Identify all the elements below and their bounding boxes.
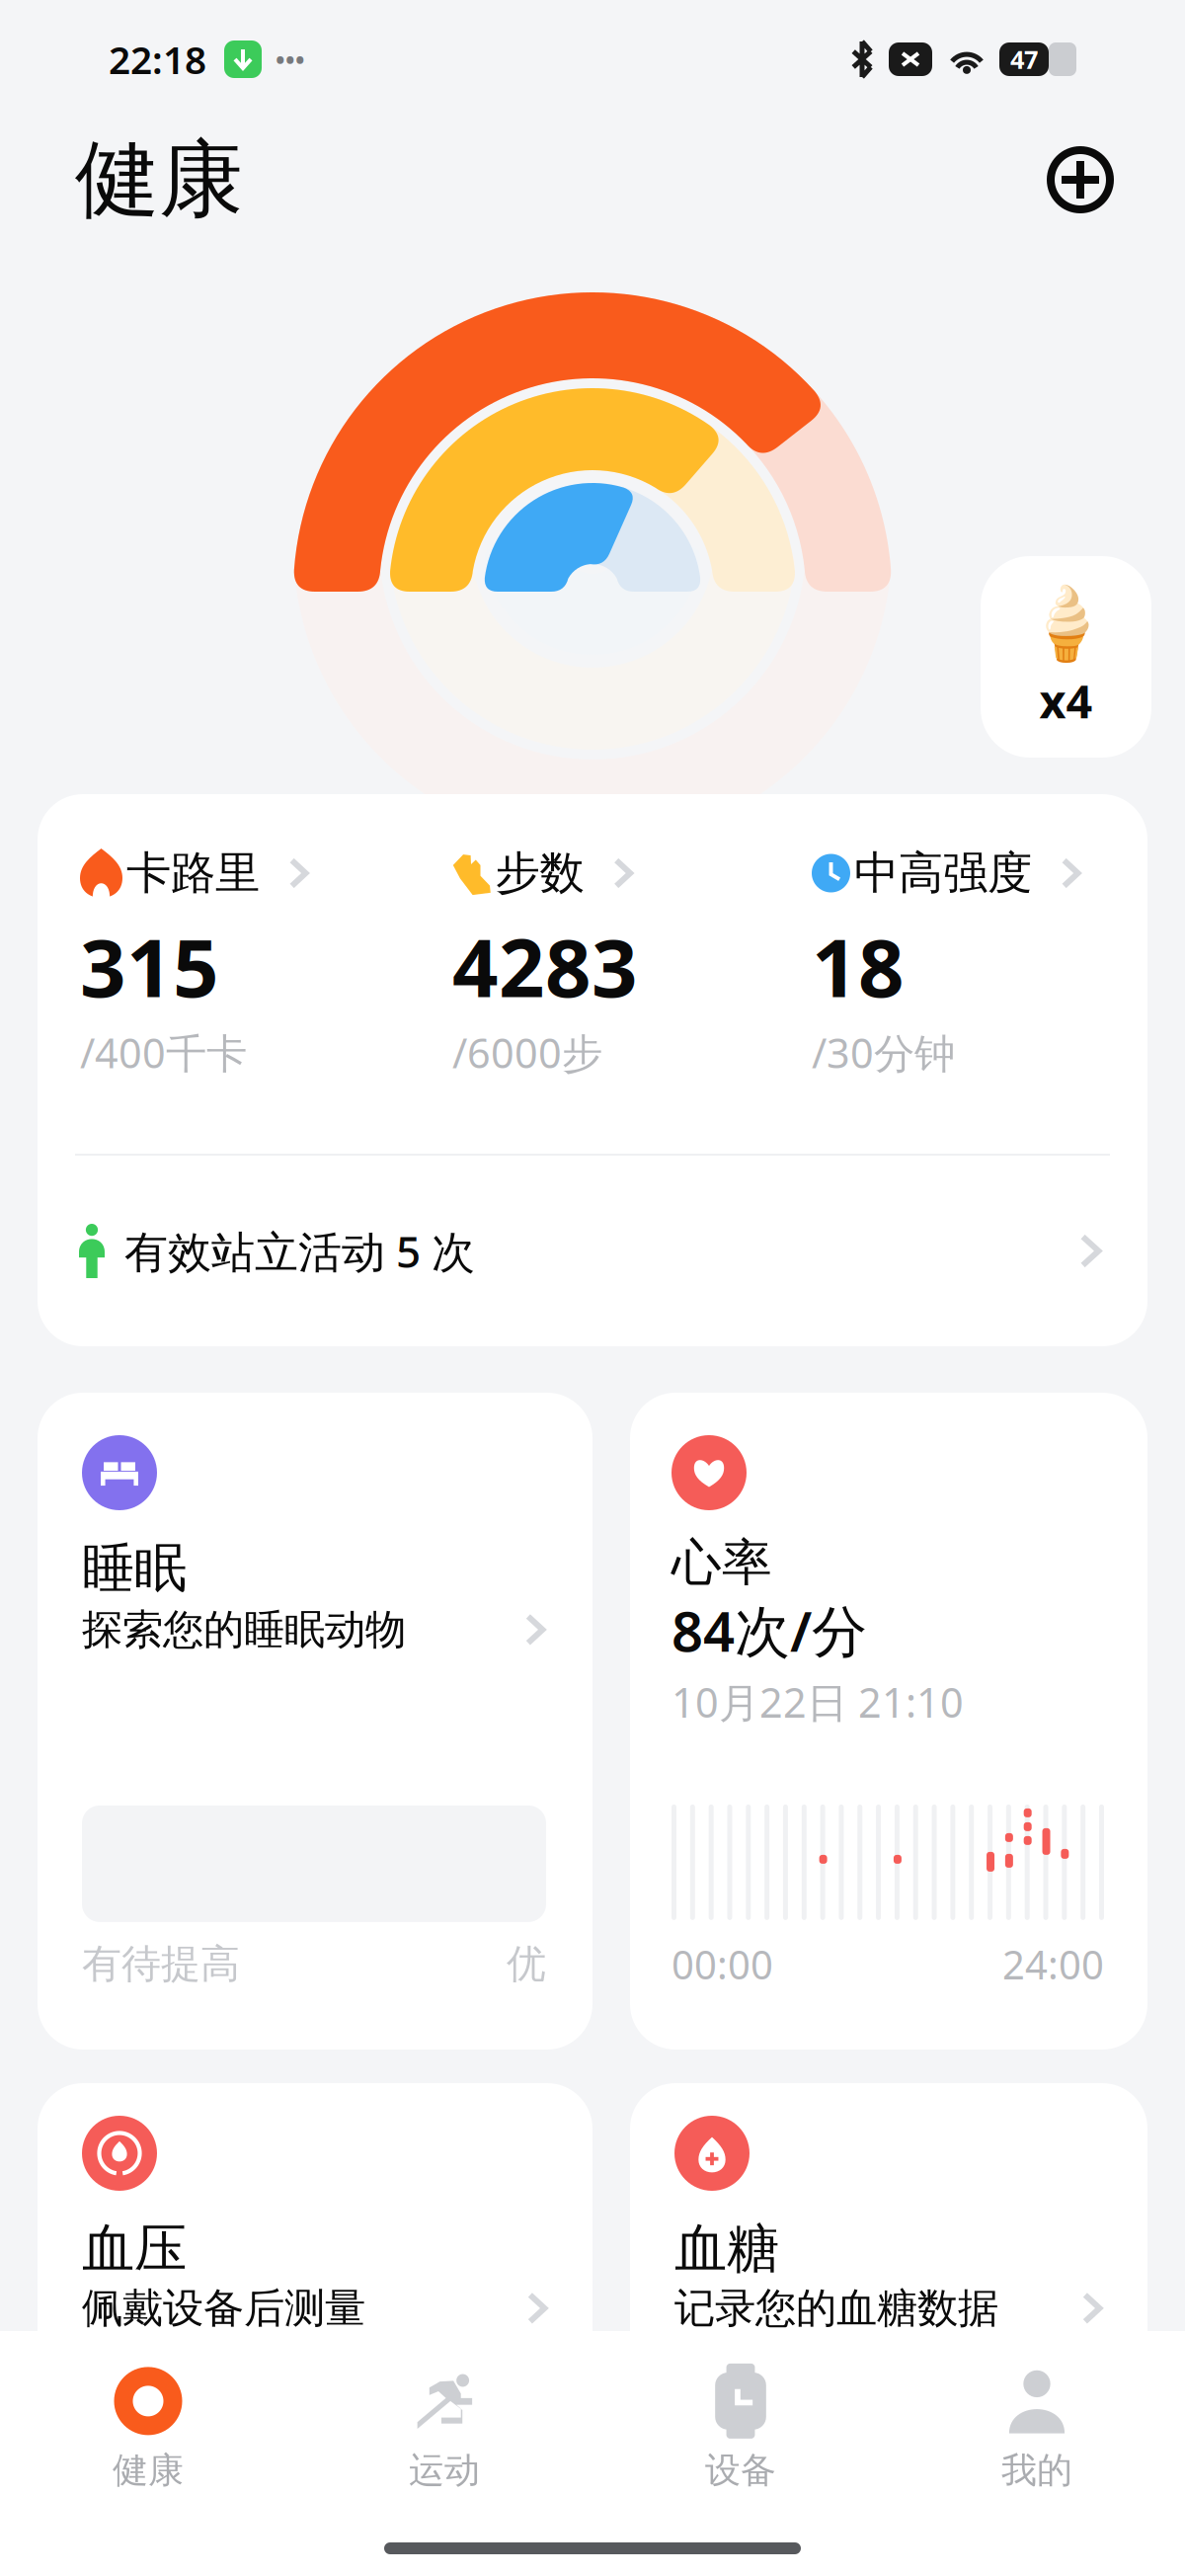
button[interactable]: 睡眠 [38,1393,592,2050]
button[interactable]: 运动 [296,2331,592,2525]
button[interactable]: 设备 [592,2331,889,2525]
staticText: 健康 [113,2448,184,2492]
staticText: 🍦 [1022,583,1110,664]
button[interactable]: 有效站立活动 5 次 [38,1156,1147,1346]
staticText: 步数 [495,846,584,901]
button[interactable]: Add [1033,132,1128,227]
staticText: /400千卡 [80,1025,247,1079]
button[interactable]: 心率 [630,1393,1147,2050]
staticText: 中高强度 [854,846,1032,901]
staticText: 心率 [671,1532,772,1593]
button[interactable]: 卡路里 [80,845,452,1079]
staticText: 315 [80,913,219,1019]
staticText: 血糖 [674,2216,779,2281]
button[interactable]: 中高强度 [812,845,1147,1079]
staticText: 记录您的血糖数据 [674,2283,998,2333]
staticText: 健康 [75,128,243,232]
staticText: /30分钟 [812,1025,955,1079]
staticText: 24:00 [1002,1938,1104,1990]
button[interactable]: 健康 [0,2331,296,2525]
staticText: /6000步 [452,1025,602,1079]
button[interactable]: 我的 [889,2331,1185,2525]
staticText: 有待提高 [82,1940,240,1988]
staticText: 血压 [82,2216,187,2281]
button[interactable]: Rewards [981,556,1151,758]
button[interactable]: 血压 [38,2083,592,2439]
staticText: 佩戴设备后测量 [82,2283,365,2333]
staticText: 优 [507,1940,546,1988]
staticText: 卡路里 [126,846,260,901]
staticText: 4283 [452,913,638,1019]
staticText: 47 [1010,43,1038,76]
staticText: 00:00 [671,1938,773,1990]
staticText: 设备 [705,2448,776,2492]
staticText: 探索您的睡眠动物 [82,1605,406,1655]
staticText: x4 [1039,670,1093,731]
staticText: 10月22日 21:10 [671,1675,964,1729]
staticText: 84次/分 [671,1593,867,1667]
button[interactable]: 步数 [452,845,812,1079]
button[interactable]: 血糖 [630,2083,1147,2439]
staticText: ••• [276,43,305,76]
staticText: 有效站立活动 5 次 [124,1222,475,1280]
staticText: 18 [812,913,905,1019]
staticText: 睡眠 [82,1536,187,1601]
staticText: 22:18 [109,34,206,85]
staticText: 运动 [409,2448,480,2492]
staticText: 我的 [1001,2448,1072,2492]
